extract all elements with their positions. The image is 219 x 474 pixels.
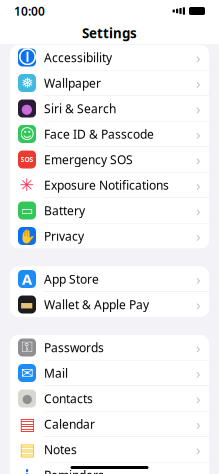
button[interactable]: ● bbox=[10, 386, 209, 411]
staticText: Wallpaper bbox=[44, 75, 101, 91]
staticText: ● bbox=[21, 101, 33, 116]
button[interactable]: ✳ bbox=[10, 172, 209, 198]
staticText: Mail bbox=[44, 365, 68, 381]
staticText: Accessibility bbox=[44, 49, 112, 65]
staticText: Passwords bbox=[44, 339, 104, 355]
staticText: ✳ bbox=[19, 175, 34, 195]
staticText: ● bbox=[22, 392, 32, 405]
staticText: Calendar bbox=[44, 416, 95, 432]
staticText: ▭ bbox=[20, 203, 33, 218]
staticText: ▤ bbox=[19, 440, 35, 459]
staticText: › bbox=[196, 73, 201, 93]
button[interactable]: ▬ bbox=[10, 292, 209, 317]
staticText: ☺ bbox=[19, 126, 34, 142]
staticText: › bbox=[196, 150, 201, 169]
staticText: Face ID & Passcode bbox=[44, 126, 154, 142]
button[interactable]: A bbox=[10, 266, 209, 292]
staticText: › bbox=[196, 363, 201, 383]
staticText: ⋮ bbox=[19, 467, 34, 474]
staticText: ▬ bbox=[20, 296, 34, 313]
staticText: ⚿ bbox=[21, 340, 32, 355]
staticText: › bbox=[196, 338, 201, 357]
staticText: › bbox=[196, 269, 201, 289]
staticText: › bbox=[196, 124, 201, 144]
staticText: › bbox=[196, 175, 201, 195]
staticText: A bbox=[22, 269, 32, 289]
staticText: Privacy bbox=[44, 228, 84, 244]
staticText: 10:00 bbox=[14, 3, 45, 19]
button[interactable]: SOS bbox=[10, 147, 209, 172]
button[interactable]: Ⓘ bbox=[10, 45, 209, 70]
staticText: Wallet & Apple Pay bbox=[44, 296, 149, 312]
button[interactable]: ▤ bbox=[10, 411, 209, 437]
staticText: ▤ bbox=[19, 414, 35, 434]
button[interactable]: ⋮ bbox=[10, 462, 209, 474]
staticText: SOS bbox=[20, 155, 33, 164]
button[interactable]: ✉ bbox=[10, 360, 209, 386]
staticText: Settings bbox=[82, 24, 137, 42]
staticText: ✋ bbox=[18, 228, 35, 244]
button[interactable]: ⚿ bbox=[10, 335, 209, 360]
staticText: › bbox=[196, 226, 201, 246]
staticText: App Store bbox=[44, 271, 99, 287]
staticText: › bbox=[196, 99, 201, 118]
staticText: › bbox=[196, 389, 201, 408]
staticText: Emergency SOS bbox=[44, 151, 133, 167]
button[interactable]: ❅ bbox=[10, 70, 209, 96]
button[interactable]: ▤ bbox=[10, 437, 209, 462]
staticText: Exposure Notifications bbox=[44, 177, 169, 193]
button[interactable]: ▭ bbox=[10, 198, 209, 223]
staticText: Notes bbox=[44, 441, 77, 457]
button[interactable]: ☺ bbox=[10, 121, 209, 147]
button[interactable]: ● bbox=[10, 96, 209, 121]
staticText: › bbox=[196, 414, 201, 434]
staticText: Contacts bbox=[44, 390, 93, 406]
staticText: › bbox=[196, 440, 201, 459]
staticText: › bbox=[196, 201, 201, 220]
staticText: Battery bbox=[44, 202, 85, 218]
staticText: Ⓘ bbox=[18, 47, 35, 68]
staticText: ✉ bbox=[21, 365, 33, 381]
staticText: ❅ bbox=[21, 75, 33, 91]
button[interactable]: ✋ bbox=[10, 223, 209, 248]
staticText: › bbox=[196, 295, 201, 314]
staticText: Siri & Search bbox=[44, 100, 116, 116]
staticText: Reminders bbox=[44, 467, 104, 474]
staticText: › bbox=[196, 48, 201, 67]
